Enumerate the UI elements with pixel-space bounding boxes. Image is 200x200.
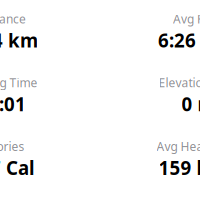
staticText: Distance bbox=[0, 11, 26, 27]
staticText: 347 Cal bbox=[0, 155, 35, 180]
staticText: Avg Pace bbox=[173, 11, 200, 27]
staticText: 159 bpm bbox=[158, 155, 200, 180]
staticText: 15.4 km bbox=[0, 28, 38, 53]
staticText: 0 m bbox=[181, 92, 200, 116]
staticText: Avg Heart Rate bbox=[156, 138, 200, 154]
staticText: Calories bbox=[0, 138, 24, 154]
staticText: 6:26 /km bbox=[158, 28, 200, 53]
staticText: Moving Time bbox=[0, 75, 37, 91]
staticText: 35:01 bbox=[0, 92, 26, 116]
staticText: Elevation Gain bbox=[158, 75, 200, 91]
